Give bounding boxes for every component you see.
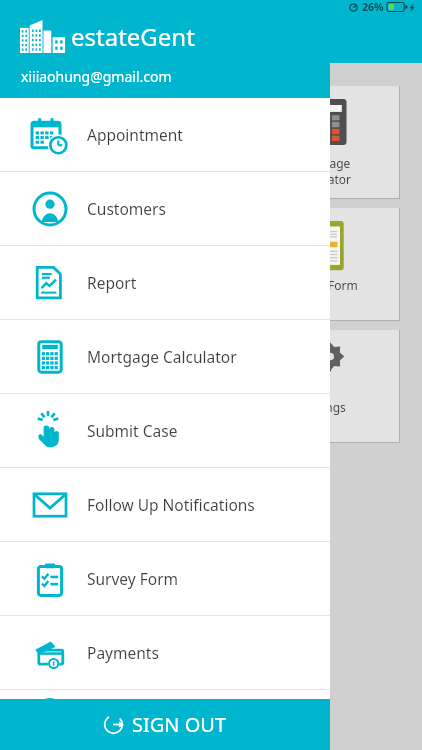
other: Follow Up Notifications (30, 485, 70, 525)
button[interactable]: Mortgage Calculator (245, 86, 400, 199)
staticText: estateGent (71, 20, 195, 53)
staticText: 26% (362, 0, 384, 14)
staticText: SIGN OUT (132, 711, 227, 738)
button[interactable]: Refresh (0, 690, 330, 735)
button[interactable]: Survey Form (245, 208, 400, 321)
button[interactable]: Appointment (0, 98, 330, 171)
button[interactable]: Settings (245, 330, 400, 443)
staticText: Settings (300, 399, 346, 415)
other: Payments (30, 633, 70, 673)
staticText: Report (87, 272, 137, 293)
button[interactable]: Follow Up Notifications (0, 468, 330, 541)
button[interactable]: Payments (0, 616, 330, 689)
staticText: Payments (87, 642, 159, 663)
staticText: Survey Form (287, 277, 358, 293)
button[interactable]: Customers (0, 172, 330, 245)
button[interactable]: Mortgage Calculator (0, 320, 330, 393)
other: Mortgage Calculator (30, 337, 70, 377)
other: Refresh (30, 693, 70, 733)
other: Customers (30, 189, 70, 229)
staticText: Mortgage Calculator (294, 155, 351, 187)
staticText: Submit Case (87, 420, 178, 441)
button[interactable]: Survey Form (0, 542, 330, 615)
staticText: Mortgage Calculator (87, 346, 237, 367)
staticText: Customers (87, 198, 166, 219)
other: Survey Form (30, 559, 70, 599)
button[interactable]: SIGN OUT (0, 699, 330, 750)
staticText: Survey Form (87, 568, 179, 589)
button[interactable]: Submit Case (0, 394, 330, 467)
other: Report (30, 263, 70, 303)
staticText: Appointment (87, 124, 183, 145)
button[interactable]: Report (0, 246, 330, 319)
staticText: xiiiaohung@gmail.com (21, 67, 172, 86)
other: Submit Case (30, 411, 70, 451)
other: Appointment (30, 115, 70, 155)
staticText: Follow Up Notifications (87, 494, 255, 515)
